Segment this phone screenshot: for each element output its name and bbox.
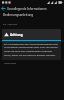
staticText: Weiterlesen — [4, 62, 17, 65]
button[interactable]: Weiterlesen — [4, 62, 17, 65]
staticText: Ein Nichtbeachten der Sicherheitshinweis… — [4, 42, 59, 57]
button[interactable]: Back — [0, 5, 7, 12]
staticText: Grundlegende Informationen — [7, 7, 47, 11]
staticText: Achtung — [10, 33, 23, 37]
staticText: Bedienungsanleitung — [3, 13, 34, 17]
staticText: DE | Deutsch — [3, 23, 18, 26]
